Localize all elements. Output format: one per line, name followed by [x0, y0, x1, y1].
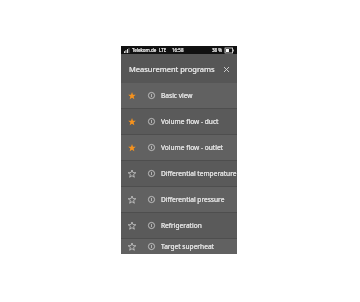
button[interactable]: Differential pressure (ΔP)	[121, 187, 237, 212]
staticText: Volume flow - duct	[161, 117, 237, 126]
staticText: Basic view	[161, 91, 237, 100]
button[interactable]: Differential temperature (ΔT)	[121, 161, 237, 186]
staticText: 38 %	[212, 47, 223, 53]
button[interactable]: Basic view	[121, 83, 237, 108]
staticText: 16:58	[172, 47, 184, 53]
staticText: Differential temperature (ΔT)	[161, 169, 237, 178]
button[interactable]: Close	[221, 64, 231, 74]
staticText: Differential pressure (ΔP)	[161, 195, 237, 204]
button[interactable]: Target superheat	[121, 239, 237, 254]
staticText: Volume flow - outlet	[161, 143, 237, 152]
staticText: Refrigeration	[161, 221, 237, 230]
staticText: Measurement programs	[129, 64, 215, 74]
button[interactable]: Volume flow - duct	[121, 109, 237, 134]
staticText: Target superheat	[161, 242, 237, 251]
button[interactable]: Refrigeration	[121, 213, 237, 238]
staticText: LTE	[159, 47, 167, 53]
staticText: Telekom.de	[132, 47, 157, 53]
button[interactable]: Volume flow - outlet	[121, 135, 237, 160]
